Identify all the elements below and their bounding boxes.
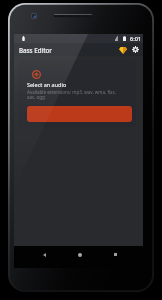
button[interactable]: Premium (116, 43, 129, 56)
button[interactable]: Back (38, 248, 51, 261)
staticText: 6:01 (130, 35, 141, 42)
button[interactable]: Recents (109, 248, 122, 261)
staticText: Bass Editor (19, 46, 52, 54)
button[interactable]: Select an audio (18, 60, 136, 127)
button[interactable]: Settings (129, 43, 142, 56)
staticText: Select an audio (27, 81, 67, 88)
button[interactable] (27, 106, 132, 122)
button[interactable]: Home (73, 248, 86, 261)
staticText: Available extensions: mp3, wav, wma, fla… (27, 89, 117, 101)
